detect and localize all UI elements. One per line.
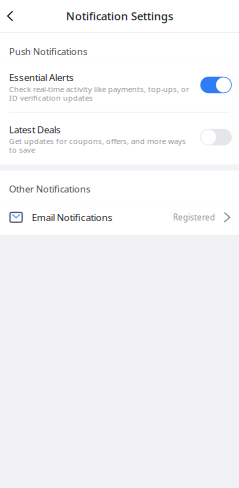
staticText: Notification Settings — [66, 8, 173, 24]
staticText: Registered — [173, 212, 215, 223]
button[interactable]: Latest Deals — [0, 113, 239, 165]
staticText: Check real-time activity like payments, … — [9, 84, 189, 103]
staticText: Latest Deals — [9, 123, 61, 136]
staticText: Push Notifications — [9, 45, 87, 58]
staticText: Essential Alerts — [9, 71, 74, 84]
staticText: Get updates for coupons, offers, and mor… — [9, 136, 186, 155]
button[interactable]: Essential Alerts — [0, 63, 239, 112]
staticText: Email Notifications — [32, 211, 113, 224]
staticText: Other Notifications — [9, 183, 90, 195]
button[interactable]: Back — [0, 1, 23, 30]
button[interactable]: Email Notifications — [0, 201, 239, 235]
